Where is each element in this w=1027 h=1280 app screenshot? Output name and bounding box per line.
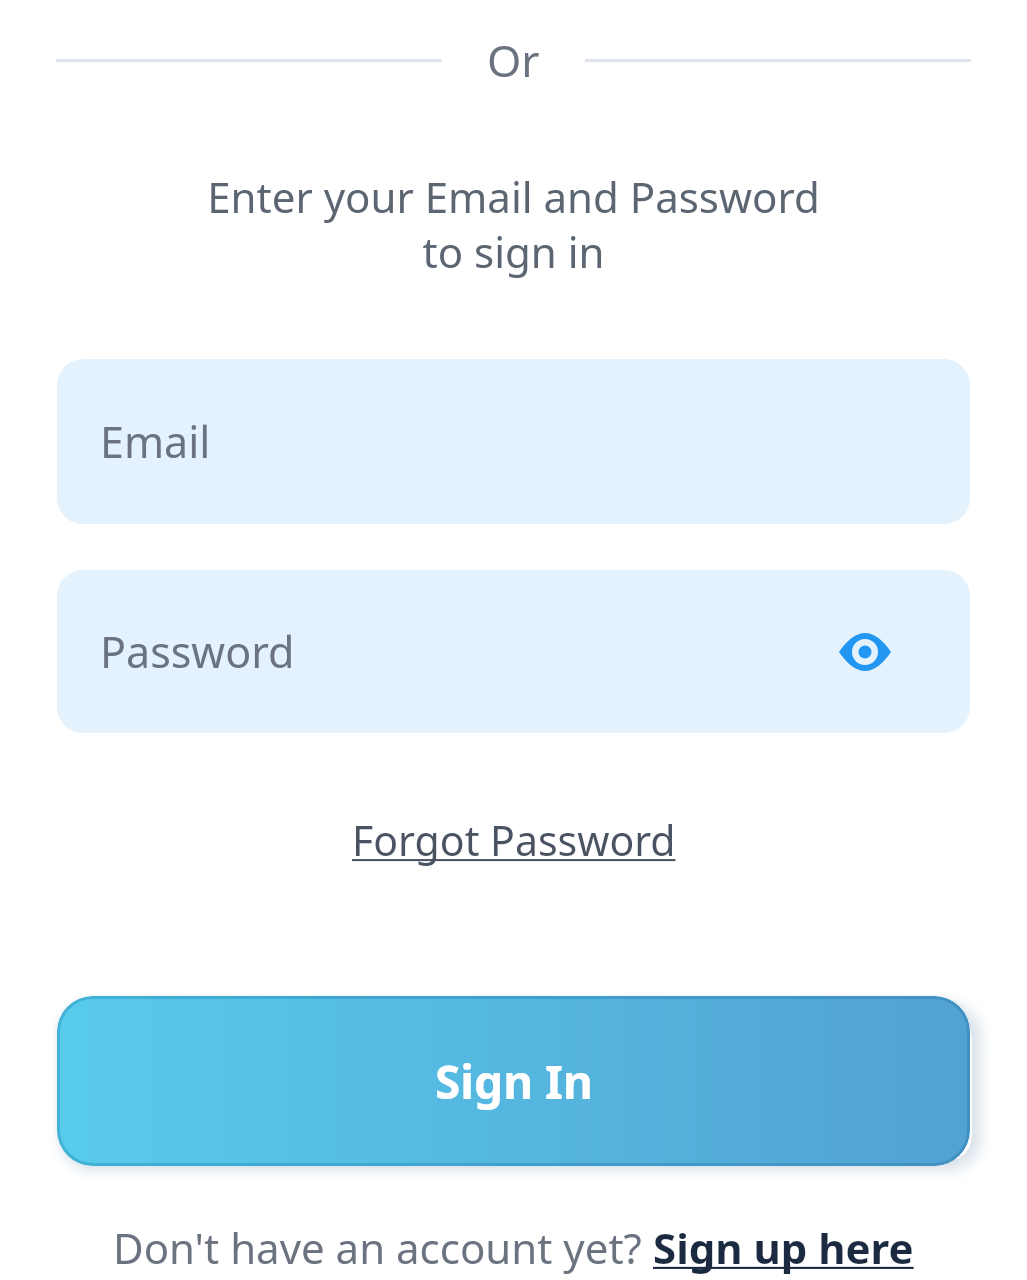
button[interactable] xyxy=(839,633,891,671)
button[interactable]: Email xyxy=(57,359,970,524)
staticText: Or xyxy=(487,30,540,90)
staticText: Email xyxy=(100,412,211,471)
staticText: Sign In xyxy=(435,1050,593,1113)
button[interactable]: Sign In xyxy=(57,996,970,1166)
staticText: Enter your Email and Password to sign in xyxy=(0,168,1027,280)
staticText: Password xyxy=(100,622,295,681)
staticText: Don't have an account yet? xyxy=(113,1219,653,1276)
button[interactable]: Sign up here xyxy=(653,1219,914,1276)
button[interactable]: Password xyxy=(57,570,970,733)
button[interactable]: Forgot Password xyxy=(352,812,676,868)
